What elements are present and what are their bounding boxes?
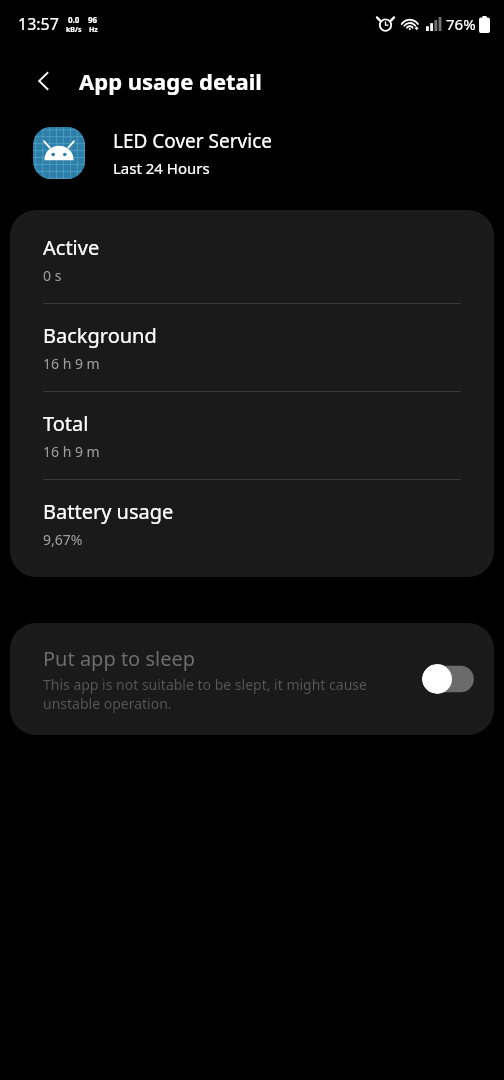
staticText: 76% [446, 14, 476, 34]
staticText: This app is not suitable to be slept, it… [43, 675, 412, 713]
button[interactable]: Total [10, 392, 494, 479]
button[interactable]: Background [10, 304, 494, 391]
staticText: Hz [89, 25, 98, 35]
staticText: Put app to sleep [43, 645, 196, 672]
staticText: Background [43, 322, 157, 349]
staticText: 96 [88, 14, 98, 25]
staticText: Total [43, 410, 89, 437]
button[interactable]: Back [20, 57, 68, 105]
button[interactable]: Put app to sleep [10, 623, 494, 735]
staticText: Active [43, 234, 100, 261]
staticText: App usage detail [79, 66, 262, 96]
button[interactable]: Put app to sleep toggle [422, 664, 474, 694]
staticText: 13:57 [18, 13, 59, 35]
staticText: Last 24 Hours [113, 158, 210, 178]
staticText: kB/s [66, 25, 82, 35]
button[interactable]: Battery usage [10, 480, 494, 577]
staticText: Battery usage [43, 498, 174, 525]
staticText: LED Cover Service [113, 128, 272, 154]
staticText: 0.0 [68, 14, 80, 25]
staticText: 9,67% [43, 530, 83, 549]
button[interactable]: Active [10, 210, 494, 303]
staticText: 0 s [43, 266, 62, 285]
staticText: 16 h 9 m [43, 354, 100, 373]
staticText: 16 h 9 m [43, 442, 100, 461]
